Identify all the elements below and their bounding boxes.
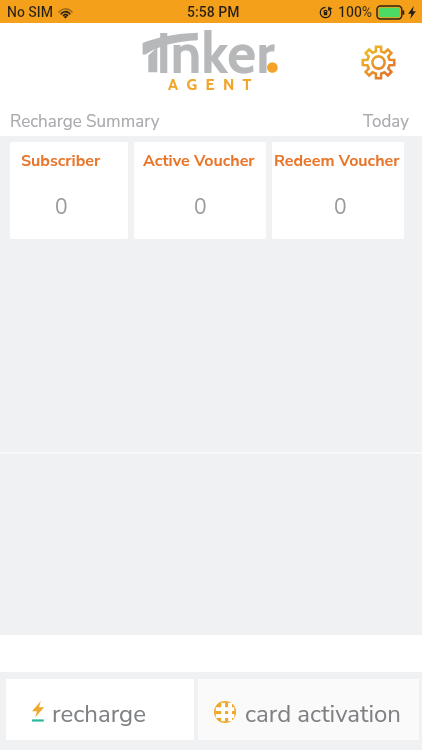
staticText: A G E N T	[168, 75, 254, 94]
staticText: No SIM	[7, 4, 54, 20]
staticText: inker	[157, 19, 275, 87]
staticText: 5:58 PM	[187, 4, 240, 20]
staticText: recharge	[52, 698, 146, 731]
staticText: 0	[334, 193, 347, 222]
staticText: Subscriber	[21, 150, 101, 172]
staticText: 0	[55, 193, 68, 222]
button[interactable]: card activation	[198, 679, 419, 740]
staticText: Recharge Summary	[10, 110, 160, 131]
button[interactable]: Redeem Voucher	[272, 142, 404, 239]
staticText: 0	[194, 193, 207, 222]
button[interactable]: Subscriber	[10, 142, 128, 239]
staticText: Active Voucher	[143, 150, 255, 172]
staticText: Today	[363, 110, 409, 131]
staticText: card activation	[245, 698, 401, 731]
staticText: Redeem Voucher	[274, 150, 400, 172]
staticText: 100%	[338, 4, 373, 20]
button[interactable]: recharge	[6, 679, 194, 740]
button[interactable]: Settings	[359, 43, 397, 81]
button[interactable]: Active Voucher	[134, 142, 266, 239]
